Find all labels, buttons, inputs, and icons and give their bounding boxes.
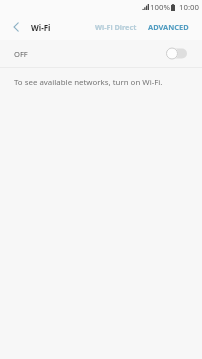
button[interactable]: Wi-Fi off <box>166 47 187 60</box>
staticText: Wi-Fi <box>31 22 51 33</box>
staticText: 100% <box>150 2 170 13</box>
staticText: To see available networks, turn on Wi-Fi… <box>14 77 163 88</box>
button[interactable]: OFF <box>0 40 202 67</box>
staticText: OFF <box>14 49 28 59</box>
staticText: Wi-Fi Direct <box>95 22 137 32</box>
staticText: 10:00 <box>179 2 199 13</box>
staticText: ADVANCED <box>148 22 189 32</box>
button[interactable]: Wi-Fi Direct <box>92 18 140 36</box>
button[interactable]: Navigate up <box>7 18 25 36</box>
button[interactable]: ADVANCED <box>145 18 192 36</box>
